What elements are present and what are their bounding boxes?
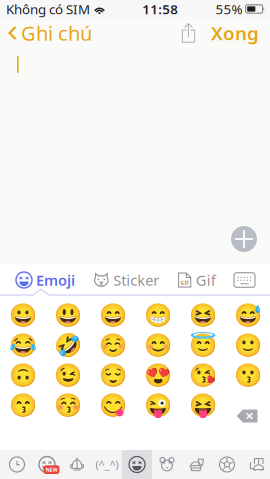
button[interactable]: 😄 bbox=[90, 304, 135, 327]
button[interactable]: Smileys and people bbox=[122, 450, 152, 479]
button[interactable]: 😘 bbox=[180, 364, 225, 387]
button[interactable]: Kaomoji bbox=[92, 450, 122, 479]
button[interactable]: GIF bbox=[178, 265, 216, 295]
button[interactable]: 😌 bbox=[90, 364, 135, 387]
button[interactable]: Food and drink bbox=[182, 450, 212, 479]
staticText: 😆 bbox=[188, 303, 216, 328]
button[interactable]: Sticker bbox=[93, 265, 159, 295]
staticText: ☺️ bbox=[98, 333, 126, 358]
staticText: 😅 bbox=[233, 303, 261, 328]
staticText: Xong bbox=[211, 21, 259, 45]
button[interactable]: Emoji bbox=[0, 265, 75, 295]
staticText: 😍 bbox=[143, 363, 171, 388]
button[interactable]: 😚 bbox=[45, 394, 90, 417]
staticText: 🤣 bbox=[53, 333, 81, 358]
staticText: 😙 bbox=[8, 393, 36, 418]
staticText: 😂 bbox=[8, 333, 36, 358]
button[interactable]: Xong bbox=[202, 16, 270, 50]
button[interactable] bbox=[225, 394, 270, 417]
staticText: Không có SIM bbox=[6, 0, 90, 18]
button[interactable]: Ghi chú bbox=[0, 15, 92, 51]
staticText: 😝 bbox=[188, 393, 216, 418]
button[interactable]: 😜 bbox=[135, 394, 180, 417]
staticText: 😋 bbox=[98, 393, 126, 418]
button[interactable]: 😉 bbox=[45, 364, 90, 387]
button[interactable]: 🙂 bbox=[225, 334, 270, 357]
button[interactable]: 😝 bbox=[180, 394, 225, 417]
button[interactable]: 😃 bbox=[45, 304, 90, 327]
button[interactable]: 😁 bbox=[135, 304, 180, 327]
staticText: Ghi chú bbox=[21, 20, 92, 46]
button[interactable]: Travel and places bbox=[242, 450, 270, 479]
staticText: 😗 bbox=[233, 363, 261, 388]
staticText: 🙃 bbox=[8, 363, 36, 388]
button[interactable]: 😊 bbox=[135, 334, 180, 357]
button[interactable]: 😅 bbox=[225, 304, 270, 327]
staticText: 😇 bbox=[188, 333, 216, 358]
staticText: 😌 bbox=[98, 363, 126, 388]
staticText: 😘 bbox=[188, 363, 216, 388]
staticText: Gif bbox=[196, 270, 216, 290]
button[interactable]: 😙 bbox=[0, 394, 45, 417]
staticText: 😚 bbox=[53, 393, 81, 418]
button[interactable]: Animals and nature bbox=[152, 450, 182, 479]
staticText: 😉 bbox=[53, 363, 81, 388]
staticText: 😀 bbox=[8, 303, 36, 328]
staticText: Sticker bbox=[113, 270, 159, 290]
button[interactable]: 😀 bbox=[0, 304, 45, 327]
staticText: 🙂 bbox=[233, 333, 261, 358]
staticText: NEW bbox=[45, 466, 57, 473]
staticText: 😜 bbox=[143, 393, 171, 418]
button[interactable]: 🙃 bbox=[0, 364, 45, 387]
button[interactable]: 😇 bbox=[180, 334, 225, 357]
staticText: 😃 bbox=[53, 303, 81, 328]
button[interactable]: ☺️ bbox=[90, 334, 135, 357]
staticText: 😊 bbox=[143, 333, 171, 358]
button[interactable]: Keyboard bbox=[234, 268, 270, 292]
staticText: Emoji bbox=[36, 270, 75, 290]
button[interactable]: Delete bbox=[236, 408, 258, 424]
button[interactable]: Share bbox=[171, 20, 202, 46]
button[interactable]: 🤣 bbox=[45, 334, 90, 357]
button[interactable]: 😆 bbox=[180, 304, 225, 327]
button[interactable]: 😂 bbox=[0, 334, 45, 357]
staticText: 11:58 bbox=[142, 0, 178, 18]
staticText: GIF bbox=[180, 279, 189, 286]
button[interactable]: 😋 bbox=[90, 394, 135, 417]
staticText: (^_^) bbox=[95, 457, 118, 472]
button[interactable]: 😍 bbox=[135, 364, 180, 387]
staticText: 😁 bbox=[143, 303, 171, 328]
button[interactable]: 😗 bbox=[225, 364, 270, 387]
button[interactable]: Recently used bbox=[2, 450, 32, 479]
button[interactable]: New emoji bbox=[32, 450, 62, 479]
staticText: 55% bbox=[215, 0, 242, 18]
button[interactable]: Add attachment bbox=[231, 226, 257, 252]
button[interactable]: Premium bbox=[62, 450, 92, 479]
staticText: 😄 bbox=[98, 303, 126, 328]
button[interactable]: Activity bbox=[212, 450, 242, 479]
